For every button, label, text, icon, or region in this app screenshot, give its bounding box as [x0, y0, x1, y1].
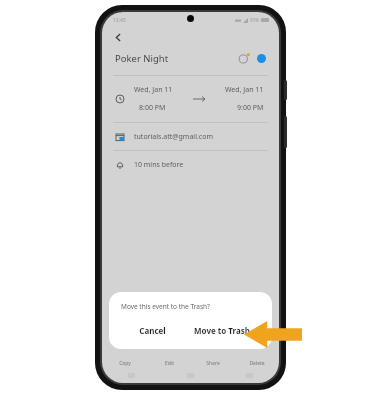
- staticText: Share: [206, 360, 220, 367]
- button[interactable]: Calendar colour: [257, 54, 266, 63]
- staticText: Wed, Jan 11: [225, 85, 264, 95]
- button[interactable]: Add emoji reaction: [238, 52, 250, 64]
- staticText: Edit: [165, 360, 174, 367]
- staticText: Delete: [249, 360, 265, 367]
- button[interactable]: Delete: [235, 351, 279, 367]
- button[interactable]: Cancel: [121, 319, 184, 341]
- staticText: tutorials.att@gmail.com: [134, 132, 213, 142]
- staticText: 8:00 PM: [139, 103, 166, 113]
- staticText: 10 mins before: [134, 160, 184, 170]
- staticText: Poker Night: [115, 52, 169, 65]
- button[interactable]: Edit: [147, 351, 191, 367]
- button[interactable]: Share: [191, 351, 235, 367]
- button[interactable]: tutorials.att@gmail.com: [102, 123, 279, 150]
- staticText: Copy: [119, 360, 131, 367]
- staticText: Wed, Jan 11: [134, 85, 173, 95]
- button[interactable]: Back: [102, 28, 279, 47]
- staticText: 9:00 PM: [237, 103, 264, 113]
- staticText: Move to Trash: [194, 325, 250, 336]
- button[interactable]: Wed, Jan 11: [102, 76, 279, 122]
- staticText: 95%: [250, 17, 259, 23]
- button[interactable]: 10 mins before: [102, 151, 279, 178]
- staticText: Cancel: [139, 325, 166, 336]
- staticText: Move this event to the Trash?: [121, 302, 210, 311]
- staticText: 12:45: [113, 17, 126, 24]
- button[interactable]: Copy: [102, 351, 147, 367]
- button[interactable]: Move to Trash: [184, 319, 260, 341]
